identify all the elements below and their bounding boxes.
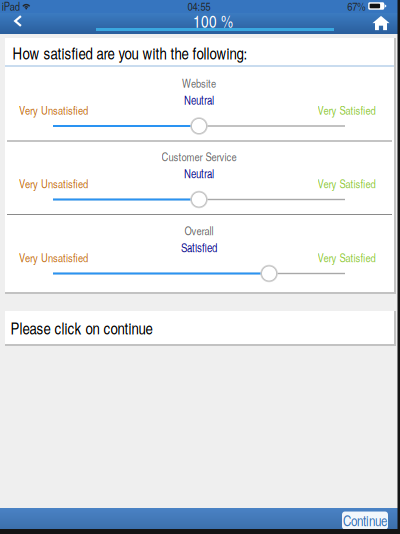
staticText: Satisfied xyxy=(181,239,217,256)
staticText: Very Satisfied xyxy=(317,176,375,191)
staticText: Very Unsatisfied xyxy=(19,102,88,118)
button[interactable]: Home xyxy=(361,12,400,33)
staticText: 100 % xyxy=(193,10,233,32)
staticText: Continue xyxy=(343,511,387,530)
staticText: Very Satisfied xyxy=(317,102,375,118)
staticText: 04:55 xyxy=(187,0,210,14)
staticText: 67% xyxy=(347,0,365,14)
staticText: Neutral xyxy=(184,165,214,182)
staticText: Please click on continue xyxy=(10,317,152,339)
button[interactable]: Back xyxy=(0,10,38,31)
staticText: Very Unsatisfied xyxy=(19,250,88,265)
staticText: How satisfied are you with the following… xyxy=(12,42,247,64)
staticText: Neutral xyxy=(184,92,214,108)
staticText: Very Unsatisfied xyxy=(19,176,88,191)
staticText: Customer Service xyxy=(161,149,236,164)
staticText: Overall xyxy=(184,223,213,238)
staticText: iPad xyxy=(2,0,20,14)
staticText: Very Satisfied xyxy=(317,250,375,265)
button[interactable]: Continue xyxy=(342,511,388,529)
staticText: Website xyxy=(182,75,216,91)
